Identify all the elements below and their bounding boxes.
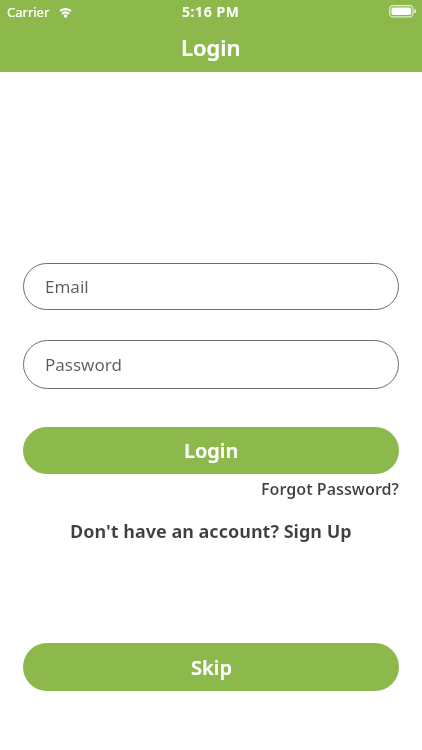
button[interactable]: Email	[23, 263, 399, 310]
staticText: 5:16 PM	[182, 2, 240, 21]
staticText: Email	[45, 275, 89, 298]
staticText: Skip	[191, 654, 232, 681]
button[interactable]: Login	[23, 427, 399, 474]
button[interactable]: Password	[23, 340, 399, 389]
button[interactable]: Forgot Password?	[261, 478, 399, 500]
staticText: Login	[184, 437, 239, 464]
staticText: Password	[45, 353, 122, 376]
button[interactable]: Don't have an account? Sign Up	[70, 519, 352, 544]
button[interactable]: Skip	[23, 643, 399, 691]
staticText: Login	[181, 32, 241, 62]
staticText: Carrier	[7, 3, 50, 21]
